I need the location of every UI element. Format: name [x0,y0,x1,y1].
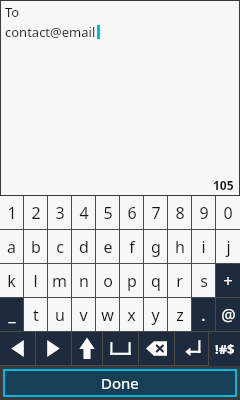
staticText: b [31,236,41,258]
button[interactable]: e [96,230,119,263]
button[interactable]: _ [0,298,23,331]
staticText: w [101,304,114,326]
staticText: f [129,236,135,258]
staticText: a [7,236,16,258]
button[interactable]: k [0,264,23,297]
staticText: r [176,270,183,292]
button[interactable]: Move cursor left [0,332,35,365]
staticText: o [103,270,113,292]
button[interactable]: b [24,230,47,263]
staticText: t [33,304,39,326]
button[interactable]: Backspace [139,332,174,365]
button[interactable]: 6 [120,196,143,229]
button[interactable]: l [24,264,47,297]
staticText: u [55,304,65,326]
button[interactable]: i [192,230,215,263]
button[interactable]: 8 [168,196,191,229]
staticText: 1 [7,202,17,224]
button[interactable]: 9 [192,196,215,229]
staticText: v [79,304,88,326]
staticText: 6 [127,202,137,224]
button[interactable]: q [144,264,167,297]
staticText: d [79,236,89,258]
button[interactable]: u [48,298,71,331]
staticText: 4 [79,202,89,224]
button[interactable]: t [24,298,47,331]
button[interactable]: !#$ [209,332,240,366]
staticText: c [56,236,64,258]
staticText: 3 [55,202,65,224]
button[interactable]: j [216,230,240,263]
staticText: contact@email [5,23,96,41]
staticText: x [127,304,136,326]
button[interactable]: Done [5,371,235,395]
button[interactable]: @ [216,298,240,331]
button[interactable]: r [168,264,191,297]
button[interactable]: Shift [72,332,102,365]
staticText: p [127,270,137,292]
button[interactable]: To [1,1,239,195]
staticText: y [151,304,160,326]
button[interactable]: 7 [144,196,167,229]
button[interactable]: Enter [175,332,208,365]
staticText: e [103,236,113,258]
button[interactable]: c [48,230,71,263]
button[interactable]: + [216,264,240,297]
button[interactable]: v [72,298,95,331]
button[interactable]: 4 [72,196,95,229]
button[interactable]: 5 [96,196,119,229]
staticText: z [176,304,184,326]
button[interactable]: y [144,298,167,331]
button[interactable]: n [72,264,95,297]
staticText: _ [8,304,16,326]
staticText: 9 [199,202,209,224]
button[interactable]: x [120,298,143,331]
staticText: !#$ [215,340,235,358]
staticText: 2 [31,202,41,224]
staticText: k [7,270,16,292]
button[interactable]: Move cursor right [36,332,71,365]
staticText: 5 [103,202,113,224]
staticText: Done [101,373,139,393]
button[interactable]: 2 [24,196,47,229]
button[interactable]: a [0,230,23,263]
button[interactable]: 3 [48,196,71,229]
staticText: @ [221,304,236,326]
button[interactable]: 1 [0,196,23,229]
staticText: . [201,304,206,326]
button[interactable]: d [72,230,95,263]
button[interactable]: w [96,298,119,331]
staticText: 8 [175,202,185,224]
button[interactable]: f [120,230,143,263]
staticText: s [200,270,208,292]
staticText: 7 [151,202,161,224]
button[interactable]: h [168,230,191,263]
staticText: 105 [213,177,234,193]
staticText: + [223,270,233,292]
staticText: q [151,270,161,292]
button[interactable]: p [120,264,143,297]
button[interactable]: 0 [216,196,240,229]
staticText: i [201,236,206,258]
staticText: l [33,270,38,292]
staticText: 0 [223,202,233,224]
button[interactable]: g [144,230,167,263]
button[interactable]: o [96,264,119,297]
staticText: m [52,270,67,292]
staticText: h [175,236,185,258]
staticText: g [151,236,161,258]
button[interactable]: Space [103,332,138,365]
staticText: To [5,3,20,21]
button[interactable]: z [168,298,191,331]
button[interactable]: . [192,298,215,331]
staticText: j [226,236,231,258]
button[interactable]: m [48,264,71,297]
button[interactable]: s [192,264,215,297]
staticText: n [79,270,89,292]
